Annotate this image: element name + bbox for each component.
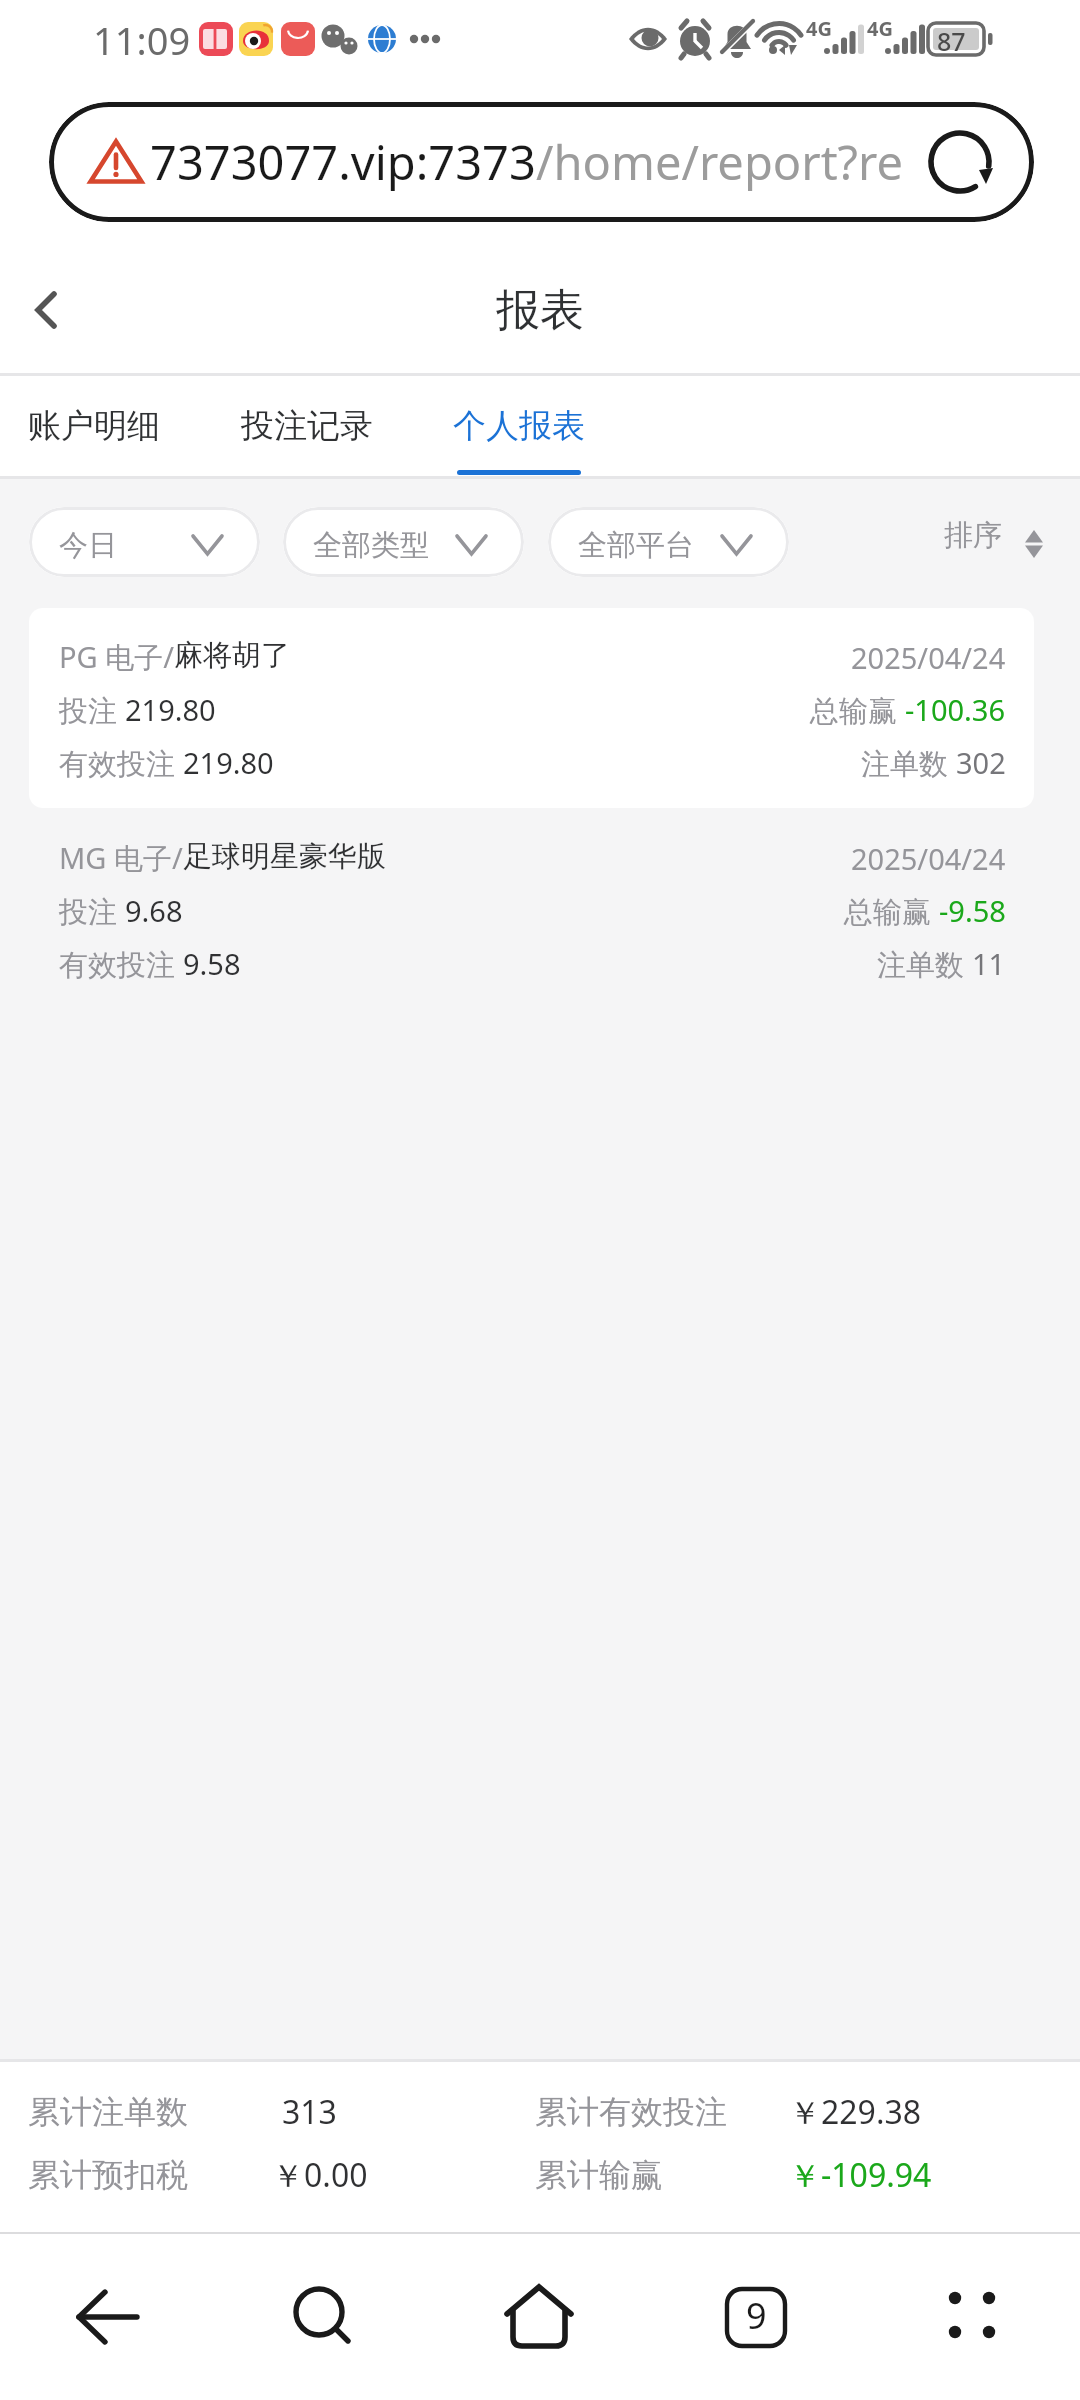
staticText: 87 xyxy=(937,24,966,58)
staticText: 累计输赢 xyxy=(535,2155,663,2195)
staticText: 7373077.vip:7373 xyxy=(150,130,536,194)
button[interactable]: Home xyxy=(484,2261,594,2371)
staticText: 账户明细 xyxy=(28,405,160,447)
staticText: 4G xyxy=(867,15,893,42)
button[interactable]: 投注记录 xyxy=(217,372,397,477)
button[interactable]: Back xyxy=(53,2262,163,2372)
button[interactable]: 全部类型 xyxy=(283,507,524,577)
button[interactable]: Reload xyxy=(920,102,1000,222)
staticText: 11 xyxy=(972,944,1006,983)
staticText: 注单数 xyxy=(861,743,956,783)
staticText: 今日 xyxy=(59,527,117,564)
staticText: 313 xyxy=(282,2090,337,2134)
button[interactable]: 个人报表 xyxy=(429,372,609,477)
staticText: ￥-109.94 xyxy=(789,2153,932,2197)
staticText: PG 电子/ xyxy=(59,637,174,677)
staticText: 219.80 xyxy=(125,690,216,729)
button[interactable]: 账户明细 xyxy=(4,372,184,477)
staticText: 投注 xyxy=(59,891,125,931)
staticText: 累计注单数 xyxy=(28,2092,188,2132)
button[interactable]: Tabs xyxy=(701,2262,811,2372)
staticText: 219.80 xyxy=(183,743,274,782)
staticText: ￥229.38 xyxy=(789,2090,922,2134)
staticText: 投注 xyxy=(59,690,125,730)
staticText: 11:09 xyxy=(93,14,191,66)
staticText: 4G xyxy=(806,15,832,42)
button[interactable]: Search xyxy=(267,2260,377,2370)
staticText: 足球明星豪华版 xyxy=(183,838,386,875)
staticText: MG 电子/ xyxy=(59,838,183,878)
staticText: 全部类型 xyxy=(313,527,429,564)
staticText: 投注记录 xyxy=(241,405,373,447)
button[interactable]: 全部平台 xyxy=(548,507,789,577)
staticText: 302 xyxy=(956,743,1006,782)
button[interactable]: 7373077.vip:7373 xyxy=(49,102,1034,222)
staticText: 9 xyxy=(746,2291,767,2340)
staticText: 麻将胡了 xyxy=(174,637,290,674)
staticText: 报表 xyxy=(496,283,584,338)
staticText: 排序 xyxy=(944,517,1002,554)
staticText: -9.58 xyxy=(939,891,1006,930)
staticText: 有效投注 xyxy=(59,743,183,783)
staticText: -100.36 xyxy=(905,690,1006,729)
staticText: 9.68 xyxy=(125,891,183,930)
staticText: 有效投注 xyxy=(59,944,183,984)
button[interactable]: Back xyxy=(0,249,100,371)
staticText: /home/report?re xyxy=(536,130,903,194)
button[interactable]: PG 电子/ xyxy=(29,608,1034,808)
staticText: 个人报表 xyxy=(453,405,585,447)
staticText: 注单数 xyxy=(877,944,972,984)
button[interactable]: MG 电子/ xyxy=(29,809,1034,1009)
staticText: 2025/04/24 xyxy=(851,839,1006,878)
staticText: 累计有效投注 xyxy=(535,2092,727,2132)
staticText: 9.58 xyxy=(183,944,241,983)
staticText: 累计预扣税 xyxy=(28,2155,188,2195)
button[interactable]: 今日 xyxy=(29,507,260,577)
staticText: ￥0.00 xyxy=(272,2153,368,2197)
staticText: 全部平台 xyxy=(578,527,694,564)
staticText: 2025/04/24 xyxy=(851,638,1006,677)
button[interactable]: 排序 xyxy=(944,500,1043,570)
staticText: 总输赢 xyxy=(844,891,939,931)
button[interactable]: Menu xyxy=(917,2260,1027,2370)
staticText: 总输赢 xyxy=(810,690,905,730)
